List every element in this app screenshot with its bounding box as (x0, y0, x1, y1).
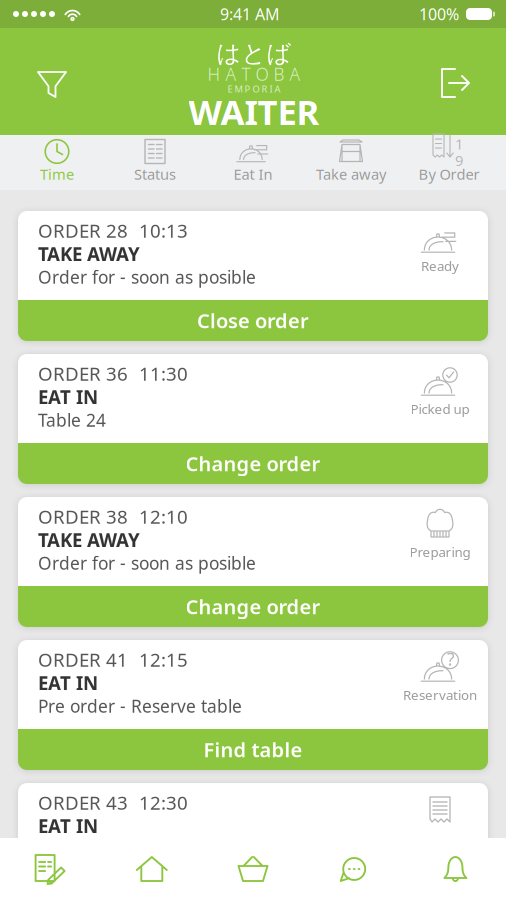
staticText: Order for - soon as posible (38, 265, 256, 288)
staticText: ORDER 38 (38, 504, 128, 529)
staticText: Take away (316, 164, 386, 184)
staticText: Order for - soon as posible (38, 551, 256, 574)
button[interactable]: Basket (202, 838, 304, 900)
button[interactable]: Take away (302, 133, 400, 192)
staticText: Ready (421, 257, 459, 275)
button[interactable]: Notifications (405, 838, 506, 900)
staticText: 12:10 (139, 504, 188, 529)
staticText: ORDER 36 (38, 361, 128, 386)
staticText: 100% (419, 3, 459, 25)
staticText: Close order (197, 307, 309, 334)
button[interactable]: Orders (0, 838, 101, 900)
staticText: ORDER 28 (38, 218, 128, 243)
staticText: Change order (185, 593, 320, 620)
staticText: Table 24 (38, 408, 106, 431)
staticText: Preparing (409, 543, 470, 561)
staticText: EAT IN (38, 671, 98, 695)
button[interactable]: Filter (20, 37, 84, 126)
staticText: Reservation (403, 686, 477, 704)
button[interactable]: 1 (400, 133, 498, 192)
staticText: 9 (455, 150, 463, 170)
staticText: H A T O B A (207, 62, 300, 85)
staticText: Change order (185, 450, 320, 477)
button[interactable]: Find table (18, 729, 488, 770)
staticText: ? (447, 647, 455, 670)
staticText: 9:41 AM (220, 3, 280, 25)
staticText: WAITER (188, 88, 319, 134)
button[interactable]: Eat In (204, 133, 302, 192)
staticText: Time (40, 164, 74, 184)
staticText: 12:30 (139, 790, 188, 815)
button[interactable]: Change order (18, 586, 488, 627)
button[interactable]: Status (106, 133, 204, 192)
staticText: Eat In (233, 164, 272, 184)
button[interactable]: Messages (304, 838, 405, 900)
staticText: 11:30 (139, 361, 188, 386)
button[interactable]: Log out (424, 38, 488, 125)
staticText: Table 12 (38, 837, 106, 860)
staticText: 12:15 (139, 647, 188, 672)
staticText: 1 (455, 134, 463, 153)
staticText: Pre order - Reserve table (38, 694, 242, 717)
staticText: By Order (418, 164, 479, 184)
button[interactable]: Change order (18, 443, 488, 484)
staticText: TAKE AWAY (38, 528, 140, 552)
staticText: ORDER 41 (38, 647, 128, 672)
button[interactable]: Close order (18, 300, 488, 341)
staticText: 10:13 (139, 218, 188, 243)
staticText: EAT IN (38, 385, 98, 409)
staticText: Status (134, 164, 176, 184)
staticText: ORDER 43 (38, 790, 128, 815)
staticText: Picked up (410, 400, 469, 418)
staticText: はとば (216, 39, 291, 68)
staticText: E M P O R I A (227, 83, 280, 95)
button[interactable]: Home (101, 838, 202, 900)
staticText: TAKE AWAY (38, 242, 140, 266)
staticText: EAT IN (38, 814, 98, 838)
button[interactable]: Time (8, 133, 106, 192)
staticText: Find table (203, 736, 302, 763)
